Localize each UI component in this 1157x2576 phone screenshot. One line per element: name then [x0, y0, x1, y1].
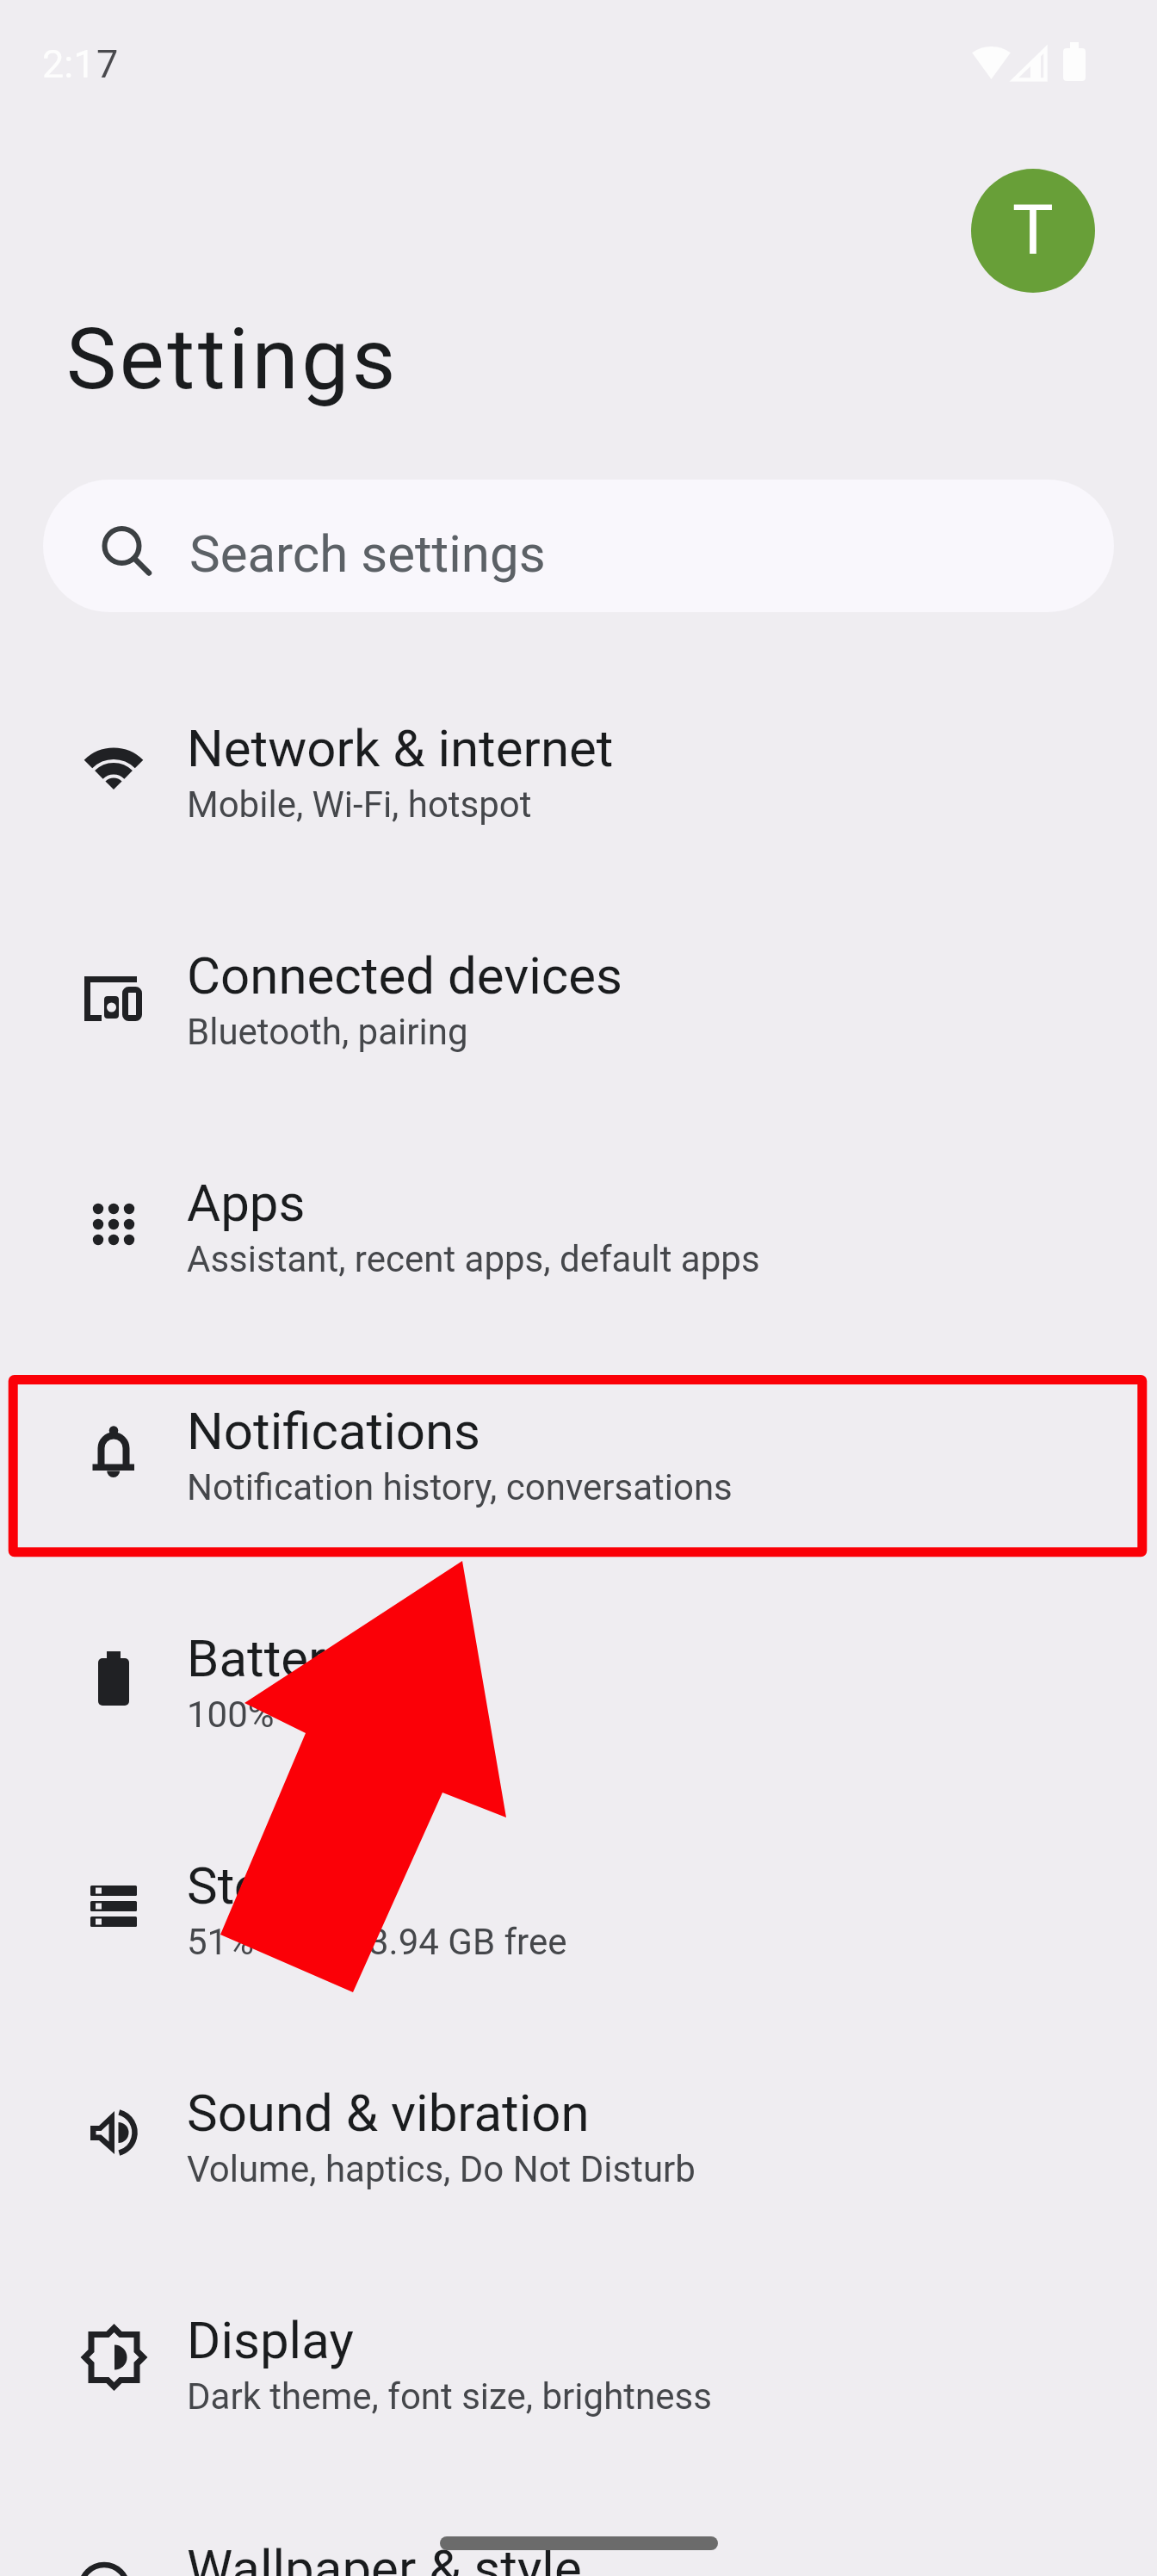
button[interactable]: Apps	[0, 1130, 1157, 1358]
staticText: 2:1	[42, 41, 96, 87]
button[interactable]: Display	[0, 2268, 1157, 2495]
staticText: Settings	[66, 310, 399, 409]
button[interactable]: Battery	[0, 1586, 1157, 1813]
staticText: Network & internet	[187, 718, 614, 778]
staticText: Bluetooth, pairing	[187, 1011, 468, 1053]
staticText: Mobile, Wi-Fi, hotspot	[187, 783, 532, 826]
staticText: Wallpaper & style	[187, 2538, 582, 2576]
staticText: Sound & vibration	[187, 2083, 590, 2143]
staticText: Dark theme, font size, brightness	[187, 2375, 712, 2418]
staticText: Battery	[187, 1628, 351, 1688]
staticText: 100%	[187, 1694, 275, 1736]
staticText: Volume, haptics, Do Not Disturb	[187, 2148, 696, 2190]
button[interactable]: Search settings	[43, 480, 1114, 612]
staticText: Apps	[187, 1173, 306, 1233]
staticText: Storage	[187, 1855, 365, 1916]
button[interactable]: Network & internet	[0, 676, 1157, 903]
staticText: 7	[96, 41, 119, 87]
staticText: 3.94 GB free	[368, 1921, 567, 1963]
staticText: Notification history, conversations	[187, 1466, 733, 1508]
button[interactable]: Sound & vibration	[0, 2040, 1157, 2268]
staticText: T	[1012, 190, 1054, 271]
staticText: Assistant, recent apps, default apps	[187, 1238, 760, 1280]
button[interactable]: Connected devices	[0, 903, 1157, 1130]
staticText: 51%	[187, 1921, 254, 1963]
staticText: Connected devices	[187, 945, 623, 1006]
button[interactable]: Storage	[0, 1813, 1157, 2040]
staticText: Display	[187, 2310, 354, 2370]
button[interactable]: T	[971, 169, 1095, 293]
staticText: Notifications	[187, 1401, 481, 1461]
button[interactable]: Notifications	[0, 1359, 1157, 1586]
button[interactable]: Wallpaper & style	[0, 2496, 1157, 2576]
staticText: Search settings	[189, 523, 546, 584]
